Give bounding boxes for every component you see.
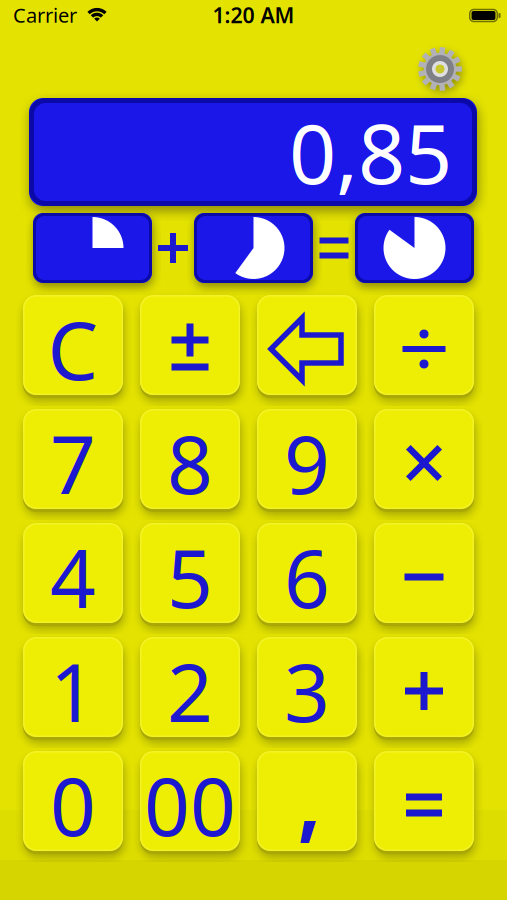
button[interactable]: 00: [140, 751, 240, 851]
button[interactable]: 4: [23, 523, 123, 623]
button[interactable]: Plus minus: [140, 295, 240, 395]
button[interactable]: Equals: [374, 751, 474, 851]
button[interactable]: 0: [23, 751, 123, 851]
button[interactable]: Delete: [257, 295, 357, 395]
button[interactable]: Comma: [257, 751, 357, 851]
button[interactable]: 1: [23, 637, 123, 737]
staticText: 7: [50, 410, 96, 516]
button[interactable]: 0.60 pie: [194, 213, 313, 283]
staticText: 1:20 AM: [212, 1, 294, 29]
button[interactable]: Divide: [374, 295, 474, 395]
button[interactable]: Plus: [374, 637, 474, 737]
staticText: 6: [284, 524, 330, 630]
staticText: 00: [144, 752, 236, 858]
button[interactable]: Multiply: [374, 409, 474, 509]
button[interactable]: 0.85 pie: [355, 213, 474, 283]
staticText: 3: [284, 638, 330, 744]
staticText: 0: [50, 752, 96, 858]
button[interactable]: 8: [140, 409, 240, 509]
staticText: C: [47, 296, 98, 402]
staticText: 1: [50, 638, 96, 744]
staticText: 9: [284, 410, 330, 516]
button[interactable]: Settings: [418, 47, 462, 91]
button[interactable]: C: [23, 295, 123, 395]
staticText: Carrier: [13, 2, 77, 28]
button[interactable]: 2: [140, 637, 240, 737]
button[interactable]: 7: [23, 409, 123, 509]
button[interactable]: 3: [257, 637, 357, 737]
staticText: 2: [167, 638, 213, 744]
button[interactable]: 6: [257, 523, 357, 623]
button[interactable]: 9: [257, 409, 357, 509]
button[interactable]: Minus: [374, 523, 474, 623]
staticText: 4: [50, 524, 96, 630]
staticText: 8: [167, 410, 213, 516]
staticText: 0,85: [289, 97, 452, 207]
button[interactable]: 5: [140, 523, 240, 623]
button[interactable]: 0.25 pie: [33, 213, 152, 283]
staticText: 5: [167, 524, 213, 630]
